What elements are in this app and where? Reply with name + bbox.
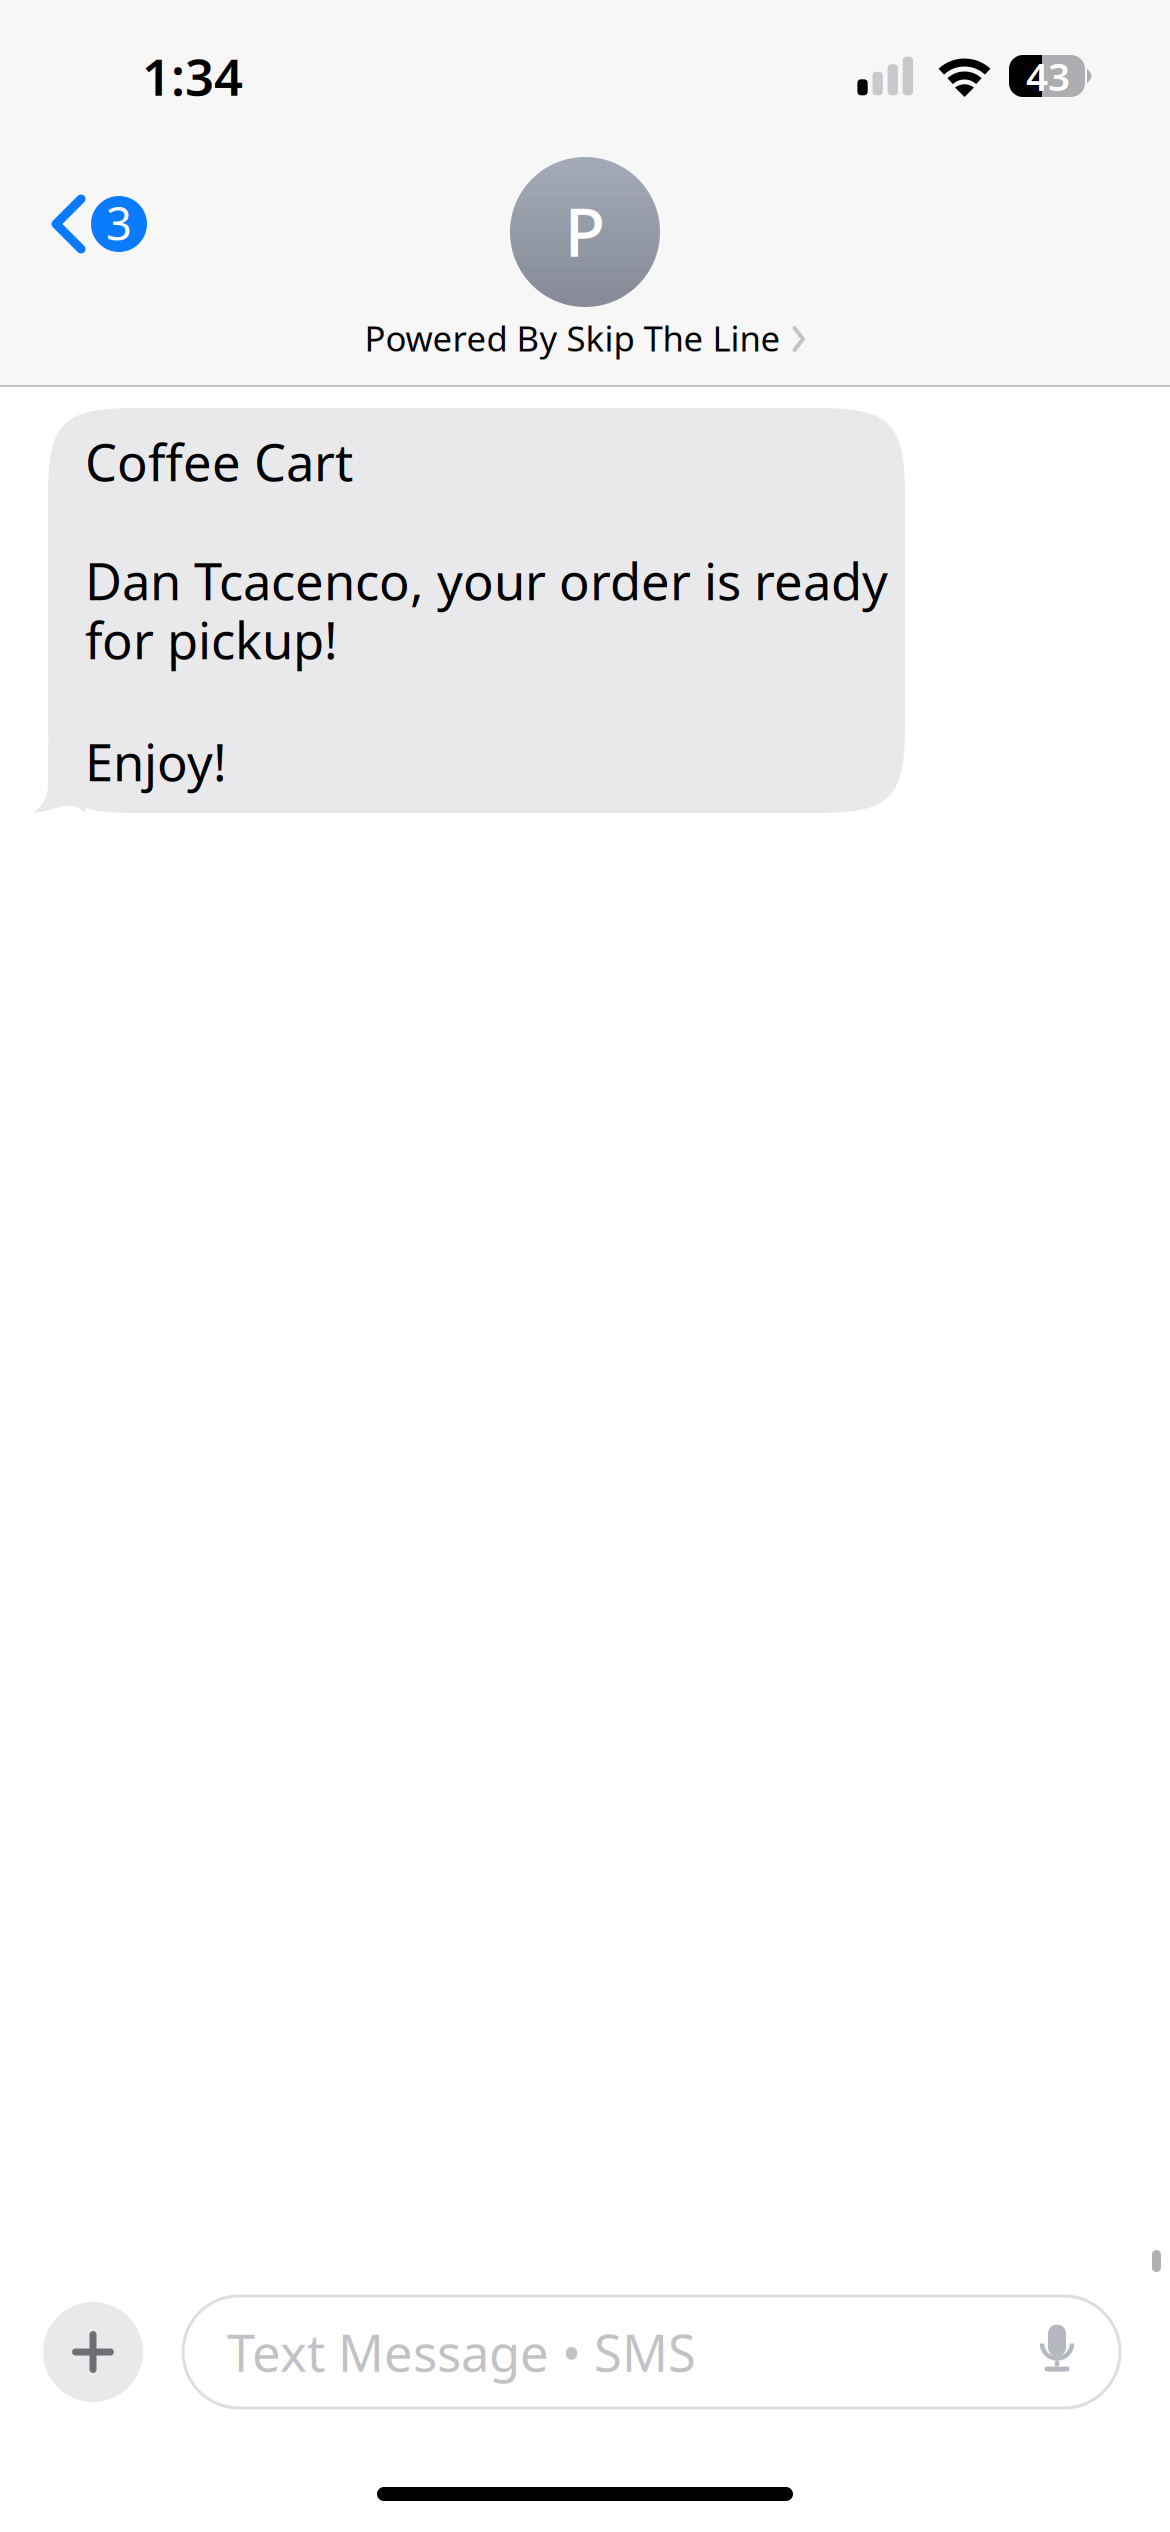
staticText: Enjoy! bbox=[85, 728, 227, 795]
staticText: for pickup! bbox=[85, 606, 338, 673]
staticText: P bbox=[564, 187, 605, 275]
button[interactable]: Text Message, SMS bbox=[183, 2296, 1120, 2408]
button[interactable]: Back, 3 unread messages bbox=[0, 174, 173, 274]
staticText: 3 bbox=[106, 193, 132, 253]
staticText: 43 bbox=[1026, 50, 1070, 102]
staticText: Text Message • SMS bbox=[227, 2318, 696, 2386]
staticText: Coffee Cart bbox=[85, 428, 353, 495]
staticText: Dan Tcacenco, your order is ready bbox=[85, 547, 888, 614]
staticText: 1:34 bbox=[142, 42, 243, 110]
button[interactable]: Add attachment bbox=[43, 2302, 143, 2402]
staticText: Powered By Skip The Line bbox=[364, 315, 780, 361]
